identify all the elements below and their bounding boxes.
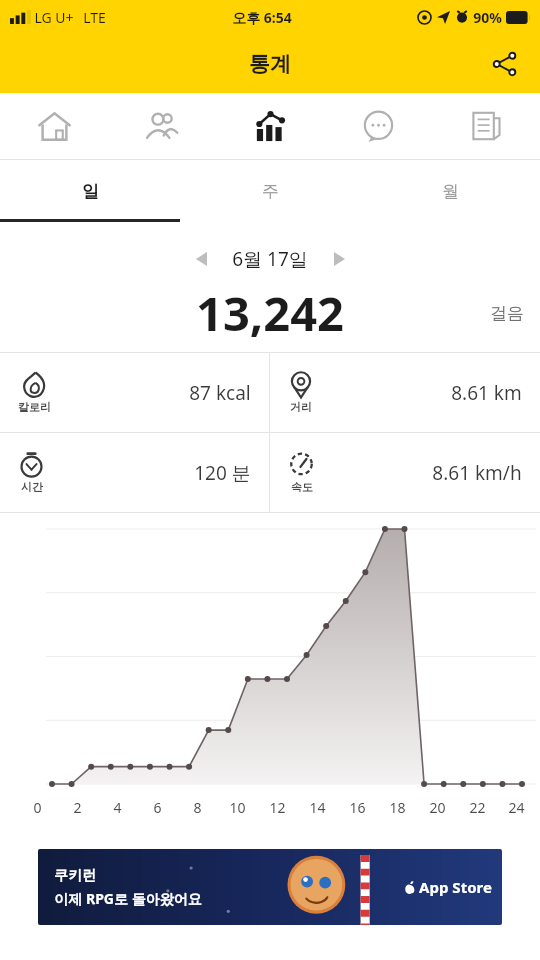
staticText: 24	[508, 798, 525, 817]
button[interactable]: 주	[180, 160, 360, 222]
staticText: 0	[33, 798, 42, 817]
button[interactable]: News	[432, 93, 540, 159]
button[interactable]: Share	[480, 40, 528, 88]
staticText: 2	[73, 798, 82, 817]
staticText: 통계	[249, 51, 291, 77]
button[interactable]: 일	[0, 160, 180, 222]
staticText: 8.61 km	[451, 380, 522, 406]
button[interactable]: 거리	[270, 353, 540, 432]
staticText: 속도	[291, 480, 313, 494]
staticText: 일	[82, 181, 99, 202]
staticText: 시간	[21, 480, 43, 494]
staticText: 걸음	[490, 303, 524, 324]
staticText: 6	[153, 798, 162, 817]
staticText: 12	[269, 798, 286, 817]
button[interactable]: 속도	[270, 433, 540, 512]
button[interactable]: Friends	[108, 93, 216, 159]
staticText: 8	[193, 798, 202, 817]
staticText: 칼로리	[18, 400, 51, 414]
staticText: 이제 RPG로 돌아왔어요	[54, 889, 202, 908]
button[interactable]: 쿠키런	[38, 849, 502, 925]
staticText: 주	[262, 181, 279, 202]
staticText: 6월 17일	[232, 246, 308, 272]
button[interactable]: 시간	[0, 433, 269, 512]
staticText: 10	[229, 798, 246, 817]
button[interactable]: 월	[360, 160, 540, 222]
staticText: 90%	[473, 8, 502, 27]
staticText: LG U+	[34, 8, 74, 27]
staticText: 13,242	[196, 281, 344, 345]
staticText: 월	[442, 181, 459, 202]
staticText: 14	[309, 798, 326, 817]
button[interactable]: 칼로리	[0, 353, 269, 432]
staticText: 87 kcal	[189, 380, 251, 406]
staticText: LTE	[83, 8, 106, 27]
button[interactable]: Next day	[322, 242, 356, 276]
staticText: 120 분	[194, 460, 251, 486]
staticText: 8.61 km/h	[432, 460, 522, 486]
staticText: 16	[349, 798, 366, 817]
staticText: 22	[469, 798, 486, 817]
button[interactable]: Previous day	[184, 242, 218, 276]
staticText: 18	[389, 798, 406, 817]
staticText: 거리	[290, 400, 312, 414]
button[interactable]: Statistics	[216, 93, 324, 159]
staticText: 쿠키런	[54, 867, 96, 885]
staticText: 오후 6:54	[232, 8, 292, 27]
staticText: 20	[429, 798, 446, 817]
staticText: 4	[113, 798, 122, 817]
button[interactable]: Home	[0, 93, 108, 159]
button[interactable]: Messages	[324, 93, 432, 159]
staticText: App Store	[419, 877, 492, 897]
